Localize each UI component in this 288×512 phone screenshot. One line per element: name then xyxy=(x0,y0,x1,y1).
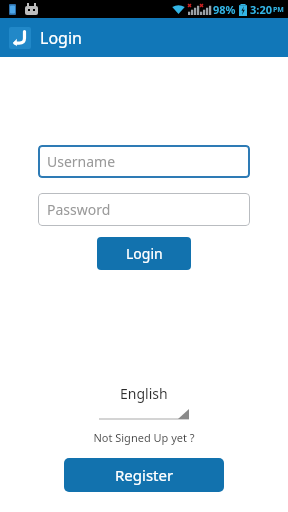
button[interactable]: App logo xyxy=(9,27,31,49)
button[interactable]: English xyxy=(99,384,189,420)
button[interactable]: Login xyxy=(97,237,191,270)
staticText: Password xyxy=(47,200,111,219)
staticText: English xyxy=(120,384,168,403)
button[interactable]: Register xyxy=(64,458,224,492)
staticText: PM xyxy=(273,5,284,15)
button[interactable]: Password xyxy=(38,193,250,226)
button[interactable]: Not Signed Up yet ? xyxy=(93,430,195,445)
staticText: Register xyxy=(115,465,174,485)
staticText: Login xyxy=(40,27,82,49)
staticText: 3:20 xyxy=(250,2,272,17)
staticText: Login xyxy=(126,244,163,263)
staticText: Username xyxy=(47,152,116,171)
staticText: 98% xyxy=(213,2,236,17)
button[interactable]: Username xyxy=(38,145,250,178)
